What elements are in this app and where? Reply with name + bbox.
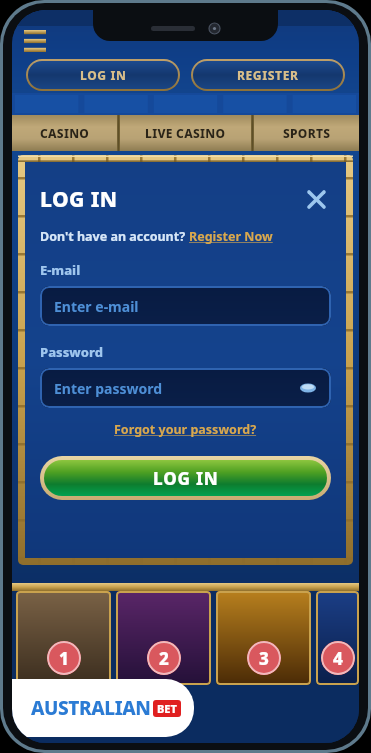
staticText: BET [157,701,177,716]
button[interactable]: Register Now [189,228,273,245]
button[interactable]: LOG IN [44,460,327,496]
button[interactable]: LIVE CASINO [120,115,251,151]
button[interactable]: Enter password [40,368,331,408]
staticText: AUSTRALIAN [31,695,151,721]
staticText: LOG IN [153,467,219,490]
staticText: 2 [159,647,169,670]
staticText: SPORTS [283,125,331,141]
staticText: E-mail [40,261,81,279]
button[interactable]: Close [301,184,331,214]
staticText: 3 [259,647,269,670]
button[interactable]: Australian.bet home [12,679,194,737]
staticText: Forgot your password? [114,421,257,438]
button[interactable]: Menu [20,26,50,56]
staticText: Don't have an account? [40,228,189,245]
staticText: 4 [333,647,343,670]
button[interactable]: 1 [16,591,111,685]
button[interactable]: Show password [297,377,319,399]
button[interactable]: Forgot your password? [114,421,257,438]
button[interactable]: 4 [316,591,359,685]
staticText: Enter e-mail [54,297,139,316]
staticText: LIVE CASINO [145,125,226,141]
staticText: Enter password [54,379,163,398]
button[interactable]: LOG IN [28,61,178,89]
button[interactable]: 2 [116,591,211,685]
button[interactable]: CASINO [12,115,117,151]
button[interactable]: REGISTER [193,61,343,89]
staticText: Password [40,343,103,361]
button[interactable]: 3 [216,591,311,685]
staticText: LOG IN [80,67,127,83]
staticText: Register Now [189,228,273,245]
button[interactable]: Enter e-mail [40,286,331,326]
staticText: CASINO [40,125,90,141]
staticText: LOG IN [40,185,118,214]
staticText: 1 [59,647,69,670]
staticText: REGISTER [237,67,299,83]
button[interactable]: SPORTS [254,115,359,151]
